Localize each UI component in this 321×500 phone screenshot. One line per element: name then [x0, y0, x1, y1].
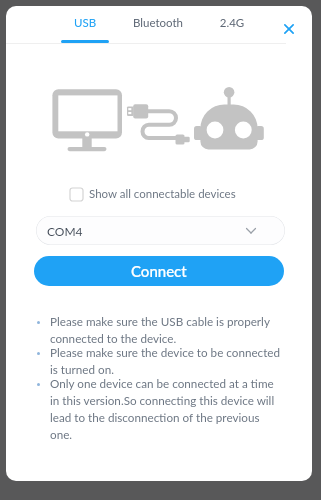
button[interactable]: 2.4G	[202, 14, 262, 44]
staticText: 2.4G	[202, 16, 262, 30]
button[interactable]: USB	[55, 14, 115, 44]
staticText: Please make sure the device to be connec…	[50, 345, 281, 376]
button[interactable]: COM4	[36, 216, 285, 245]
staticText: USB	[55, 16, 115, 30]
staticText: Please make sure the USB cable is proper…	[50, 314, 270, 345]
staticText: Show all connectable devices	[89, 187, 236, 201]
button[interactable]: Bluetooth	[128, 14, 188, 44]
staticText: Bluetooth	[128, 16, 188, 30]
staticText: COM4	[47, 224, 83, 238]
button[interactable]: Connect	[34, 256, 284, 286]
button[interactable]: Close	[280, 20, 298, 38]
button[interactable]: Show all connectable devices	[70, 187, 236, 201]
staticText: Only one device can be connected at a ti…	[50, 376, 275, 441]
staticText: Connect	[131, 262, 187, 280]
